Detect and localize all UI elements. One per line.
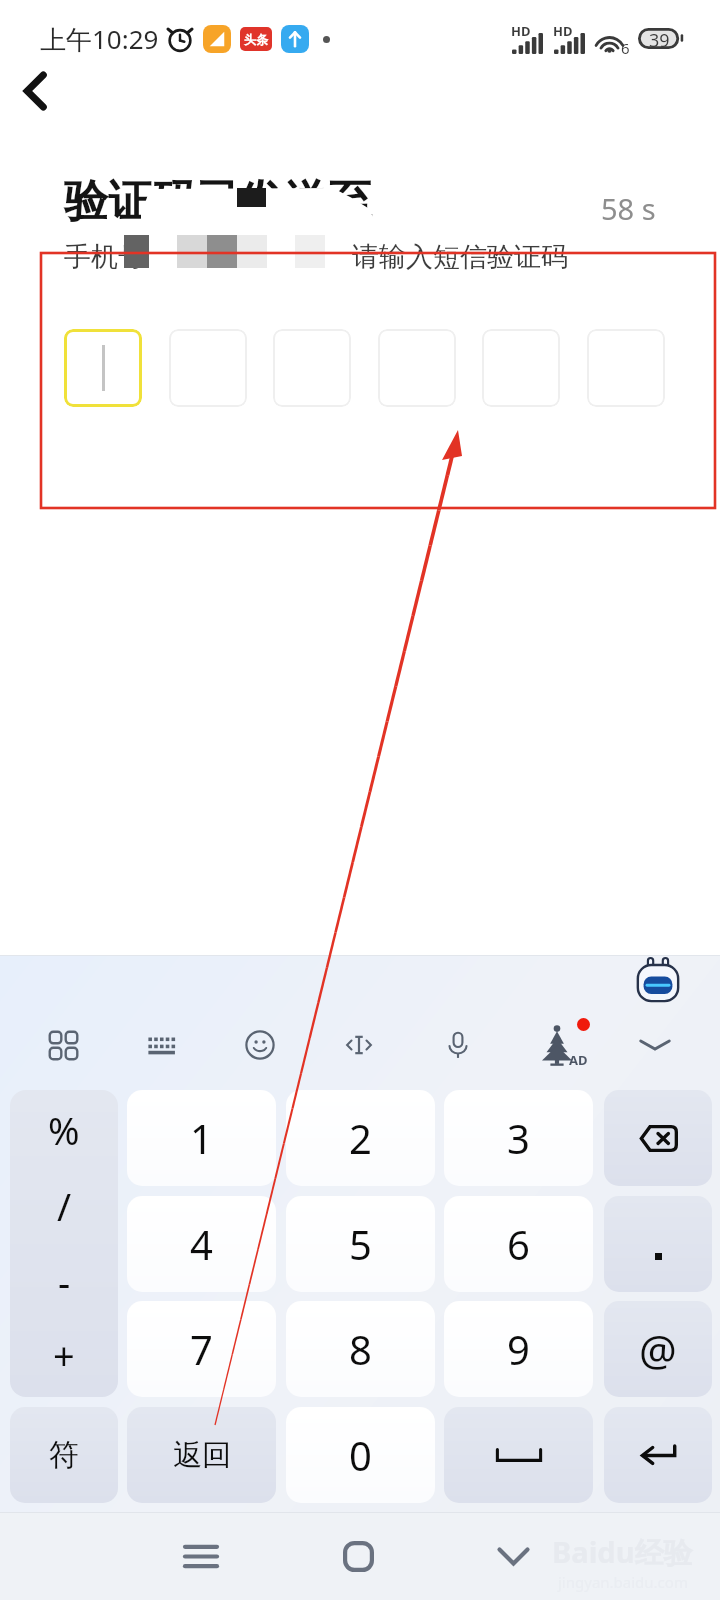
staticText: 1 <box>190 1111 213 1165</box>
staticText: 8 <box>349 1322 372 1376</box>
staticText: HD <box>553 22 573 40</box>
staticText: 头条 <box>244 32 268 47</box>
button[interactable]: 8 <box>286 1301 435 1397</box>
button[interactable]: Enter <box>604 1407 712 1503</box>
staticText: 2 <box>349 1111 372 1165</box>
staticText: + <box>53 1329 75 1381</box>
button[interactable]: Back <box>473 1516 553 1596</box>
button[interactable]: 7 <box>127 1301 276 1397</box>
staticText: 3 <box>507 1111 530 1165</box>
staticText: 返回 <box>173 1437 231 1474</box>
staticText: 手机号 <box>64 240 145 274</box>
staticText: HD <box>511 22 531 40</box>
button[interactable]: 0 <box>286 1407 435 1503</box>
staticText: 验证码已发送至 <box>64 174 372 229</box>
staticText: 5 <box>349 1217 372 1271</box>
button[interactable]: Hide keyboard <box>610 1000 700 1090</box>
button[interactable]: Space <box>444 1407 593 1503</box>
button[interactable]: 2 <box>286 1090 435 1186</box>
button[interactable]: 5 <box>286 1196 435 1292</box>
button[interactable]: 4 <box>127 1196 276 1292</box>
button[interactable]: Emoji <box>215 1000 305 1090</box>
button[interactable]: Period <box>604 1196 712 1292</box>
button[interactable]: 符 <box>10 1407 118 1503</box>
button[interactable]: Backspace <box>604 1090 712 1186</box>
button[interactable]: AI assistant <box>634 958 682 1002</box>
button[interactable] <box>273 329 351 407</box>
button[interactable] <box>64 329 142 407</box>
button[interactable]: 9 <box>444 1301 593 1397</box>
staticText: 0 <box>349 1428 372 1482</box>
button[interactable]: Keyboard layout <box>117 1000 207 1090</box>
staticText: 7 <box>190 1322 213 1376</box>
staticText: 符 <box>49 1436 79 1474</box>
button[interactable]: Voice input <box>413 1000 503 1090</box>
staticText: 4 <box>190 1217 213 1271</box>
button[interactable]: 返回 <box>127 1407 276 1503</box>
button[interactable] <box>482 329 560 407</box>
button[interactable]: More tools <box>18 1000 108 1090</box>
button[interactable]: 3 <box>444 1090 593 1186</box>
staticText: 6 <box>507 1217 530 1271</box>
staticText: - <box>58 1256 71 1308</box>
staticText: 39 <box>649 28 670 49</box>
button[interactable]: % <box>10 1090 118 1397</box>
staticText: 上午10:29 <box>40 21 159 57</box>
button[interactable]: 1 <box>127 1090 276 1186</box>
button[interactable]: @ <box>604 1301 712 1397</box>
staticText: / <box>57 1180 72 1232</box>
staticText: 6 <box>621 38 630 58</box>
button[interactable] <box>169 329 247 407</box>
staticText: 请输入短信验证码 <box>352 240 568 274</box>
staticText: 58 s <box>601 189 656 228</box>
staticText: % <box>48 1104 80 1156</box>
button[interactable]: 6 <box>444 1196 593 1292</box>
button[interactable]: Back <box>6 62 64 120</box>
button[interactable]: Edit cursor <box>314 1000 404 1090</box>
staticText: 9 <box>507 1322 530 1376</box>
button[interactable]: Theme ad <box>512 1000 602 1090</box>
staticText: Baidu经验 <box>552 1532 693 1572</box>
staticText: AD <box>569 1051 588 1069</box>
button[interactable]: Recents <box>161 1516 241 1596</box>
button[interactable] <box>378 329 456 407</box>
button[interactable]: Home <box>318 1516 398 1596</box>
button[interactable] <box>587 329 665 407</box>
staticText: @ <box>639 1321 677 1378</box>
